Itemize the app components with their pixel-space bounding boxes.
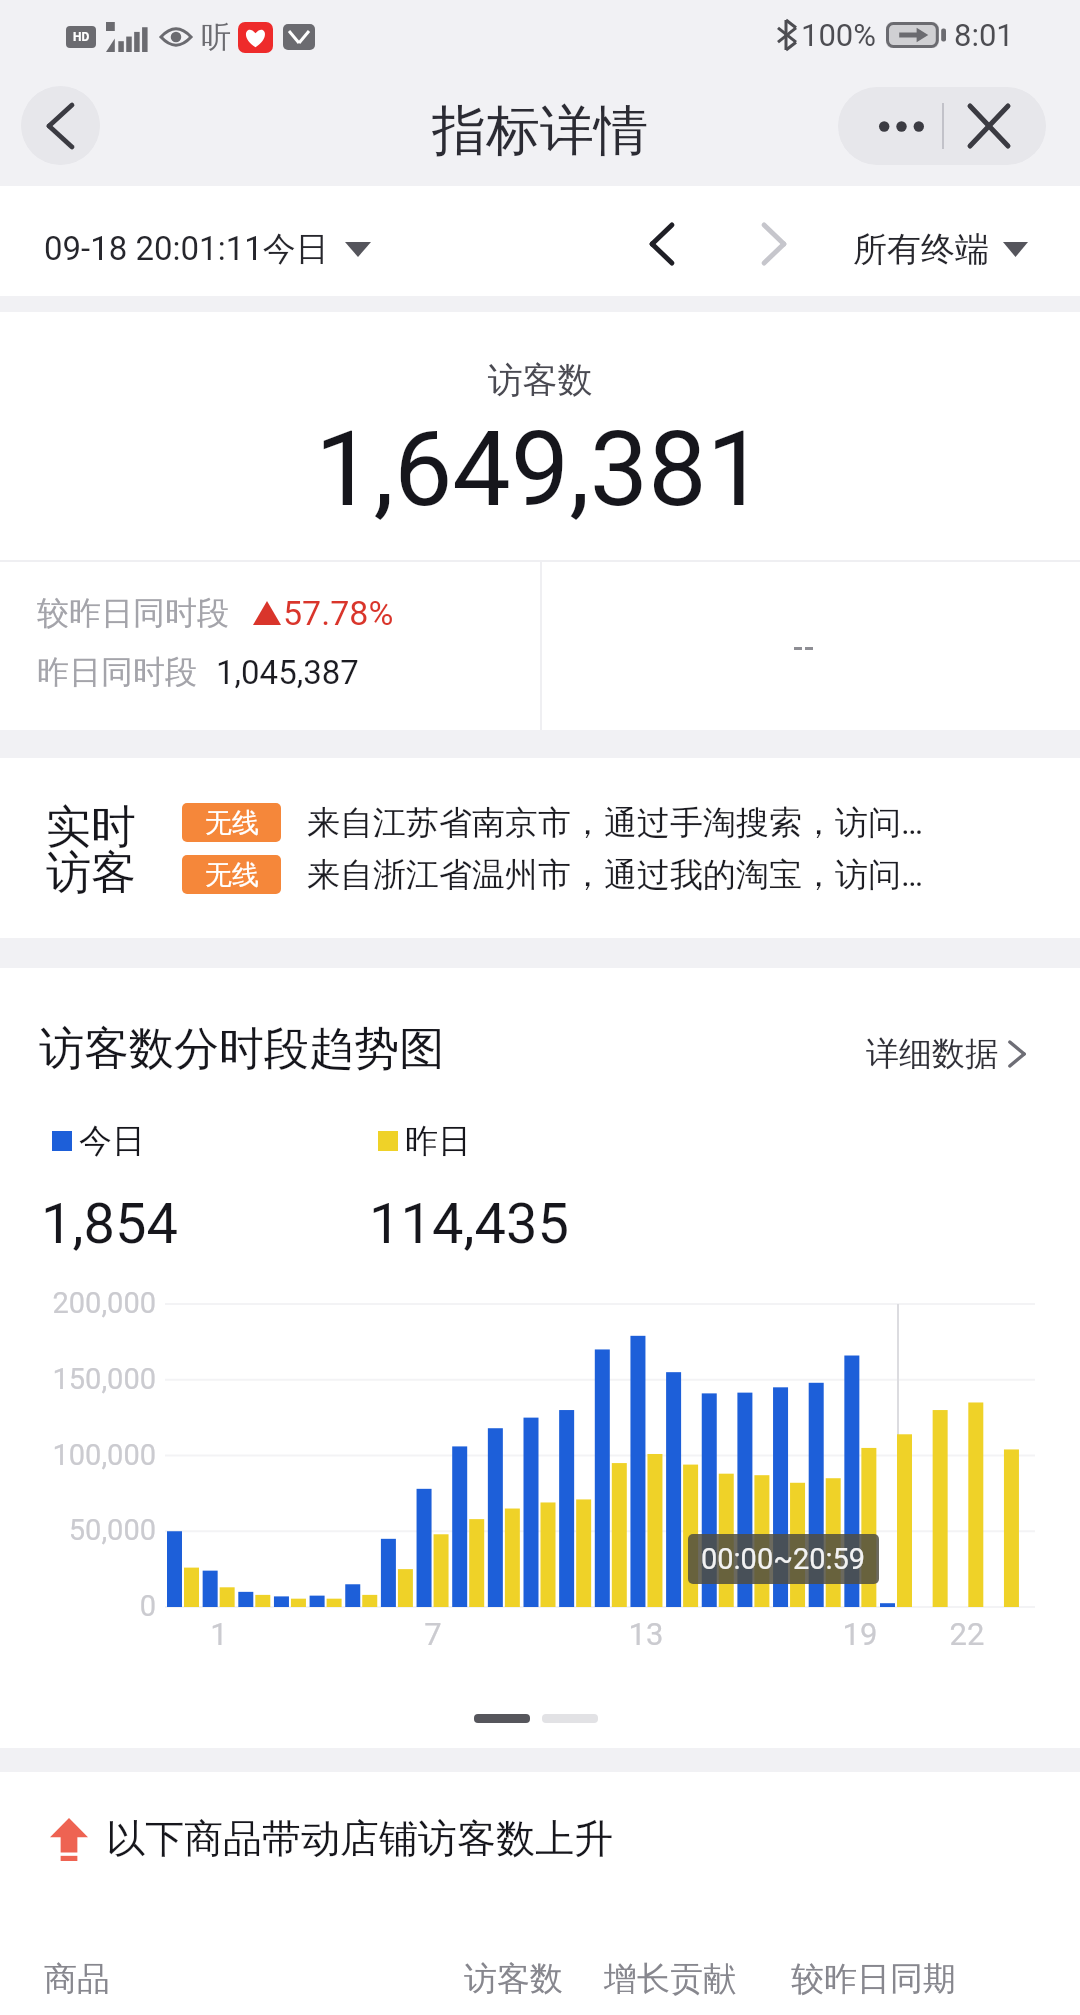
staticText: 50,000 (0, 1513, 156, 1547)
staticText: 8:01 (954, 17, 1014, 53)
staticText: 7 (393, 1616, 473, 1652)
button[interactable]: 所有终端 (853, 194, 1028, 304)
staticText: 昨日 (405, 1120, 471, 1162)
staticText: 57.78% (283, 593, 394, 633)
staticText: 访客数分时段趋势图 (39, 1021, 444, 1078)
staticText: 实时 (46, 799, 136, 856)
button[interactable]: 详细数据 (866, 1033, 1026, 1075)
staticText: 商品 (44, 1958, 110, 2000)
button[interactable]: Page 1 (474, 1714, 530, 1723)
staticText: 访客数 (464, 1958, 563, 2000)
button[interactable]: 实时访客 (40, 790, 140, 900)
staticText: 09-18 20:01:11今日 (44, 228, 329, 270)
staticText: 详细数据 (866, 1033, 998, 1075)
staticText: 所有终端 (853, 228, 989, 271)
staticText: 100,000 (0, 1438, 156, 1472)
staticText: 访客 (46, 845, 136, 902)
staticText: 听 (201, 18, 231, 56)
staticText: 较昨日同期 (791, 1958, 956, 2000)
staticText: 以下商品带动店铺访客数上升 (106, 1814, 613, 1863)
staticText: 1,854 (41, 1191, 178, 1257)
staticText: 访客数 (0, 358, 1080, 402)
staticText: 今日 (79, 1120, 145, 1162)
staticText: 150,000 (0, 1362, 156, 1396)
staticText: 来自浙江省温州市，通过我的淘宝，访问… (307, 854, 924, 894)
button[interactable]: 较昨日同时段 57.78% (0, 562, 540, 730)
button[interactable]: Back (21, 86, 100, 165)
button[interactable]: Close (942, 87, 1046, 165)
staticText: HD (73, 30, 90, 44)
button[interactable]: More options (838, 87, 942, 165)
staticText: 114,435 (369, 1191, 569, 1257)
staticText: 1,045,387 (216, 653, 359, 692)
staticText: 22 (927, 1616, 1007, 1652)
button[interactable]: Next period (742, 192, 806, 296)
staticText: 1 (179, 1616, 259, 1652)
staticText: 增长贡献 (604, 1958, 736, 2000)
staticText: 较昨日同时段 (37, 593, 229, 633)
button[interactable]: Page 2 (542, 1714, 598, 1723)
staticText: 00:00~20:59 (701, 1542, 866, 1576)
staticText: 无线 (205, 806, 259, 840)
button[interactable]: 无线 (182, 802, 924, 842)
staticText: 1,649,381 (0, 409, 1080, 531)
button[interactable]: 09-18 20:01:11今日 (44, 194, 371, 304)
button[interactable]: 商品 访客数 增长贡献 较昨日同期 (0, 1942, 1080, 2002)
staticText: 19 (820, 1616, 900, 1652)
staticText: 无线 (205, 858, 259, 892)
staticText: 100% (801, 17, 876, 53)
staticText: 指标详情 (0, 97, 1080, 165)
staticText: 13 (606, 1616, 686, 1652)
staticText: 昨日同时段 (37, 652, 197, 692)
button[interactable]: 访客数 1,649,381 (0, 312, 1080, 560)
staticText: 200,000 (0, 1286, 156, 1320)
staticText: 0 (0, 1589, 156, 1623)
button[interactable]: 无线 (182, 854, 924, 894)
button[interactable]: Previous period (630, 192, 694, 296)
staticText: 来自江苏省南京市，通过手淘搜索，访问… (307, 802, 924, 842)
